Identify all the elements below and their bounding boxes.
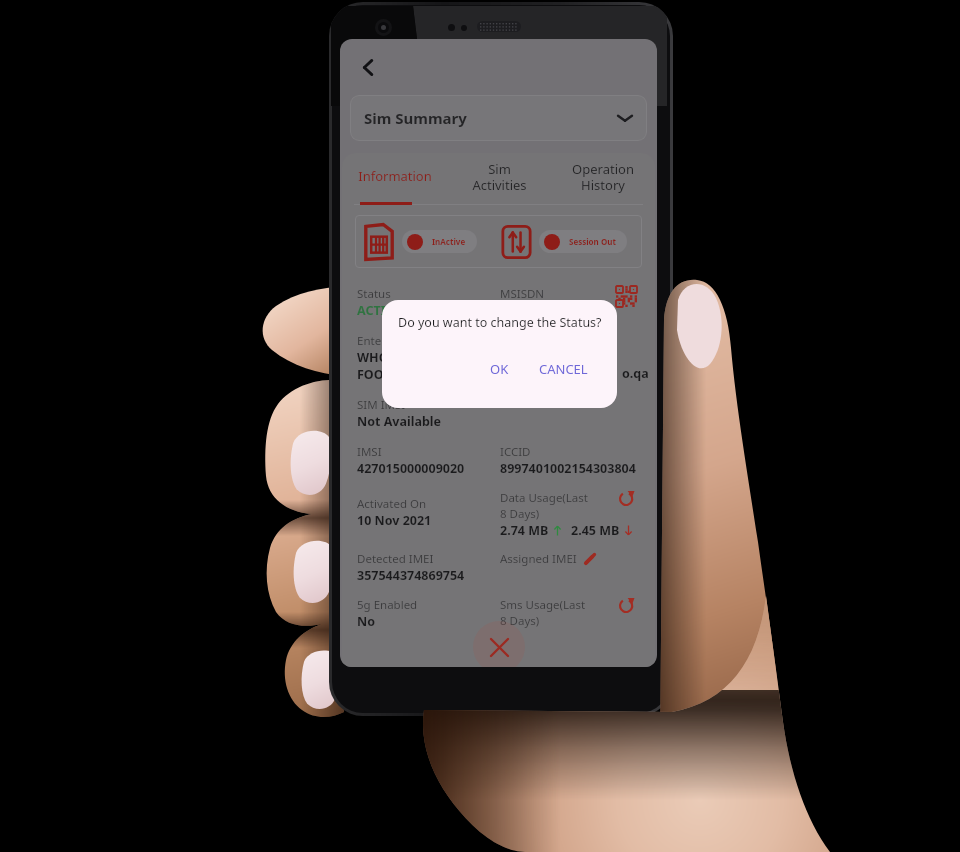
staticText: Activated On xyxy=(357,496,427,512)
button[interactable]: Session Out xyxy=(539,230,627,253)
button[interactable]: Information xyxy=(342,153,447,199)
staticText: 10 Nov 2021 xyxy=(357,512,432,529)
staticText: SIM IMSI xyxy=(357,397,406,413)
staticText: No xyxy=(357,613,375,630)
staticText: Do you want to change the Status? xyxy=(398,314,602,331)
button[interactable]: QR code xyxy=(615,285,637,307)
staticText: WHOLESALE - xyxy=(357,349,440,366)
staticText: OK xyxy=(490,360,509,378)
staticText: 2.45 MB xyxy=(571,522,620,539)
staticText: Operation History xyxy=(572,160,634,193)
staticText: 8 Days) xyxy=(500,506,540,522)
staticText: Assigned IMEI xyxy=(500,551,577,567)
staticText: 8 Days) xyxy=(500,613,540,629)
button[interactable]: Operation History xyxy=(551,153,655,199)
button[interactable]: CANCEL xyxy=(529,355,598,383)
staticText: MSISDN xyxy=(500,286,545,302)
staticText: Session Out xyxy=(569,236,616,247)
staticText: Detected IMEI xyxy=(357,551,434,567)
button[interactable]: InActive xyxy=(402,230,477,253)
button[interactable]: Sim Summary xyxy=(350,95,647,141)
staticText: Not Available xyxy=(357,413,441,430)
staticText: Sms Usage(Last xyxy=(500,597,586,613)
staticText: Data Usage(Last xyxy=(500,490,588,506)
staticText: ICCID xyxy=(500,444,531,460)
staticText: FOOD xyxy=(357,366,393,383)
button[interactable]: Back xyxy=(350,49,386,85)
staticText: ACTIVE xyxy=(357,302,401,319)
staticText: Status xyxy=(357,286,391,302)
staticText: Information xyxy=(358,167,432,185)
staticText: o.qa xyxy=(622,365,649,382)
button[interactable]: Sim Activities xyxy=(447,153,551,199)
staticText: 357544374869754 xyxy=(357,567,465,584)
staticText: 5g Enabled xyxy=(357,597,418,613)
button[interactable]: SIM xyxy=(364,223,394,261)
button[interactable]: Session xyxy=(501,225,532,259)
staticText: 427015000009020 xyxy=(357,460,465,477)
staticText: 2.74 MB xyxy=(500,522,549,539)
staticText: Sim Activities xyxy=(472,160,527,193)
staticText: CANCEL xyxy=(539,360,588,378)
button[interactable]: Refresh xyxy=(615,487,637,509)
button[interactable]: Close xyxy=(473,621,525,667)
button[interactable]: Refresh xyxy=(615,594,637,616)
button[interactable]: Edit xyxy=(582,552,597,567)
staticText: Enterprise xyxy=(357,333,413,349)
staticText: InActive xyxy=(432,236,466,247)
staticText: 8997401002154303804 xyxy=(500,460,636,477)
staticText: Sim Summary xyxy=(364,108,467,128)
button[interactable]: OK xyxy=(480,355,519,383)
staticText: IMSI xyxy=(357,444,382,460)
